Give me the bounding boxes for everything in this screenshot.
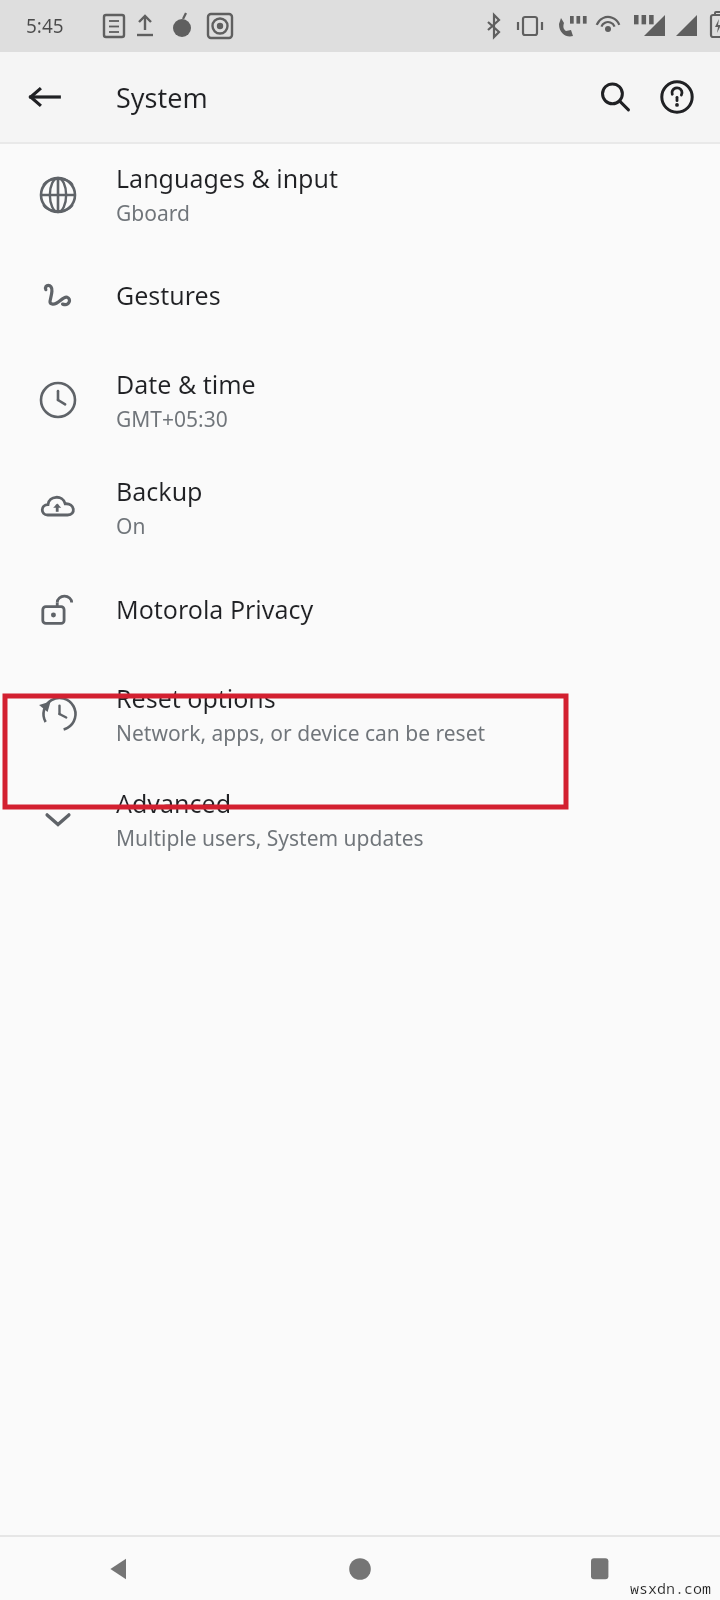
staticText: GMT+05:30: [116, 405, 228, 434]
button[interactable]: Motorola Privacy: [0, 559, 720, 659]
button[interactable]: Help: [646, 66, 708, 128]
staticText: Date & time: [116, 367, 256, 401]
button[interactable]: Date & time: [0, 345, 720, 455]
staticText: Network, apps, or device can be reset: [116, 719, 486, 748]
button[interactable]: Recents: [480, 1537, 720, 1600]
button[interactable]: Home: [240, 1537, 480, 1600]
staticText: wsxdn.com: [630, 1578, 712, 1598]
staticText: Advanced: [116, 786, 232, 820]
button[interactable]: Back: [0, 1537, 240, 1600]
button[interactable]: Search: [584, 66, 646, 128]
button[interactable]: Advanced: [0, 769, 720, 869]
staticText: Reset options: [116, 681, 276, 715]
button[interactable]: Languages & input: [0, 144, 720, 245]
button[interactable]: Back: [15, 67, 75, 127]
button[interactable]: Gestures: [0, 245, 720, 345]
staticText: Backup: [116, 474, 203, 508]
staticText: 5:45: [26, 13, 64, 39]
staticText: Gboard: [116, 199, 190, 228]
button[interactable]: Reset options: [0, 659, 720, 769]
button[interactable]: Backup: [0, 455, 720, 559]
staticText: Multiple users, System updates: [116, 824, 424, 853]
staticText: System: [116, 79, 208, 116]
staticText: On: [116, 512, 146, 541]
staticText: Motorola Privacy: [116, 592, 314, 626]
staticText: Languages & input: [116, 161, 338, 195]
staticText: Gestures: [116, 278, 221, 312]
